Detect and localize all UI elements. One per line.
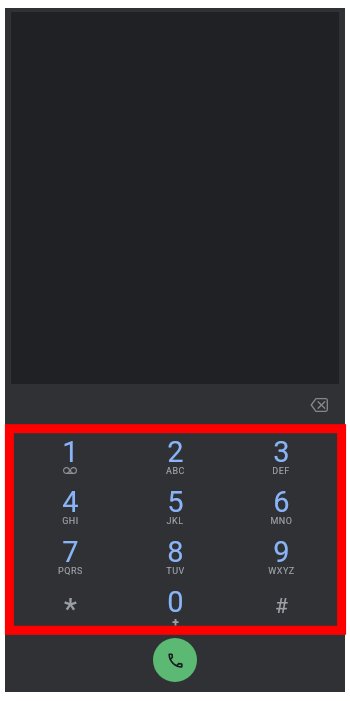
button[interactable]: 4 <box>17 485 123 535</box>
button[interactable]: 3 <box>228 435 334 485</box>
staticText: 8 <box>167 535 184 569</box>
staticText: MNO <box>270 516 293 527</box>
staticText: 4 <box>62 485 79 519</box>
button[interactable]: 0 <box>122 585 228 635</box>
staticText: JKL <box>166 516 184 527</box>
staticText: DEF <box>272 466 290 477</box>
staticText: GHI <box>62 516 79 527</box>
button[interactable]: # <box>228 585 334 635</box>
staticText: 6 <box>273 485 290 519</box>
staticText: 5 <box>167 485 184 519</box>
button[interactable]: 5 <box>122 485 228 535</box>
button[interactable]: 2 <box>122 435 228 485</box>
staticText: 7 <box>62 535 79 569</box>
button[interactable]: 6 <box>228 485 334 535</box>
staticText: + <box>172 616 179 630</box>
button[interactable]: 1 <box>17 435 123 485</box>
staticText: # <box>275 594 288 619</box>
button[interactable]: 9 <box>228 535 334 585</box>
staticText: 9 <box>273 535 290 569</box>
staticText: 3 <box>273 435 290 469</box>
button[interactable]: Call <box>153 638 197 682</box>
button[interactable]: 7 <box>17 535 123 585</box>
staticText: ABC <box>166 466 185 477</box>
button[interactable]: Backspace <box>301 387 337 423</box>
staticText: 2 <box>167 435 184 469</box>
staticText: 0 <box>167 585 184 619</box>
button[interactable]: * <box>17 585 123 635</box>
staticText: 1 <box>62 435 79 469</box>
staticText: TUV <box>166 566 185 577</box>
button[interactable]: 8 <box>122 535 228 585</box>
staticText: * <box>64 591 77 626</box>
staticText: WXYZ <box>268 566 295 577</box>
staticText: PQRS <box>58 566 83 577</box>
